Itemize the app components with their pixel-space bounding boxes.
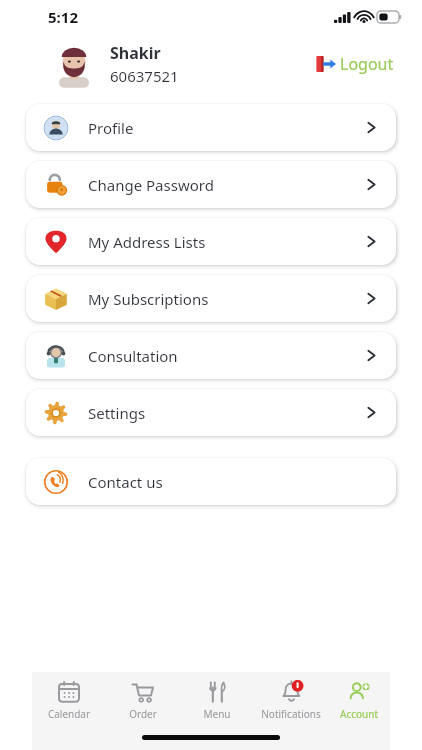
staticText: Consultation xyxy=(88,346,178,366)
staticText: Menu xyxy=(180,707,254,721)
button[interactable]: My Address Lists xyxy=(26,218,396,265)
button[interactable]: Profile xyxy=(26,104,396,151)
staticText: Contact us xyxy=(88,472,163,492)
staticText: Logout xyxy=(340,53,394,75)
button[interactable]: Notifications xyxy=(254,680,328,722)
staticText: Shakir xyxy=(110,42,161,64)
staticText: Account xyxy=(328,707,390,721)
staticText: 5:12 xyxy=(48,7,78,27)
staticText: Settings xyxy=(88,403,146,423)
button[interactable]: Calendar xyxy=(32,680,106,722)
staticText: Order xyxy=(106,707,180,721)
button[interactable]: Consultation xyxy=(26,332,396,379)
button[interactable]: Order xyxy=(106,680,180,722)
staticText: Calendar xyxy=(32,707,106,721)
button[interactable]: Change Password xyxy=(26,161,396,208)
staticText: Profile xyxy=(88,118,134,138)
staticText: My Address Lists xyxy=(88,232,206,252)
staticText: 60637521 xyxy=(110,66,179,86)
button[interactable]: My Subscriptions xyxy=(26,275,396,322)
button[interactable]: Logout xyxy=(312,49,398,79)
button[interactable]: Account xyxy=(328,680,390,722)
button[interactable]: Settings xyxy=(26,389,396,436)
staticText: Change Password xyxy=(88,175,214,195)
staticText: My Subscriptions xyxy=(88,289,209,309)
staticText: Notifications xyxy=(254,707,328,721)
button[interactable]: Menu xyxy=(180,680,254,722)
button[interactable]: Contact us xyxy=(26,458,396,505)
